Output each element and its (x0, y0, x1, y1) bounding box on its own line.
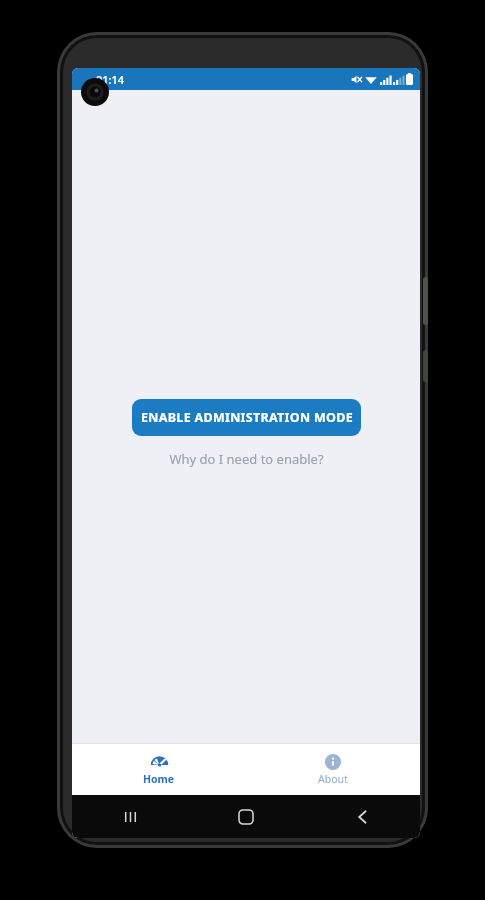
staticText: Home (143, 772, 175, 786)
button[interactable]: About (246, 744, 420, 795)
button[interactable]: Recents (72, 795, 188, 838)
staticText: About (318, 772, 348, 786)
staticText: Why do I need to enable? (169, 450, 324, 468)
button[interactable]: Back (304, 795, 420, 838)
button[interactable]: ENABLE ADMINISTRATION MODE (132, 399, 361, 436)
button[interactable]: Home (188, 795, 304, 838)
staticText: 01:14 (96, 72, 125, 87)
button[interactable]: Why do I need to enable? (165, 448, 328, 470)
button[interactable]: Home (72, 744, 246, 795)
staticText: ENABLE ADMINISTRATION MODE (141, 409, 353, 426)
